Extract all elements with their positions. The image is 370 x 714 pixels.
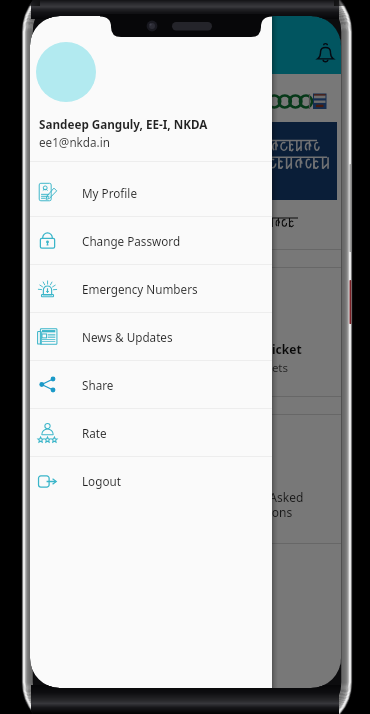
staticText: Change Password xyxy=(82,233,181,249)
button[interactable]: News & Updates xyxy=(30,313,272,361)
button[interactable]: Emergency Numbers xyxy=(30,265,272,313)
button[interactable]: Logout xyxy=(30,457,272,505)
other: Notifications xyxy=(317,43,334,64)
staticText: Frequently Asked xyxy=(206,489,304,505)
staticText: Track your tickets xyxy=(194,360,289,376)
staticText: Rate xyxy=(82,425,107,441)
button[interactable]: Rate xyxy=(30,409,272,457)
staticText: Questions xyxy=(235,504,293,520)
staticText: Logout xyxy=(82,473,121,489)
button[interactable]: Share xyxy=(30,361,272,409)
staticText: Complaint / Ticket xyxy=(192,341,302,357)
staticText: News & Updates xyxy=(82,329,173,345)
staticText: Emergency Numbers xyxy=(82,281,198,297)
staticText: ee1@nkda.in xyxy=(39,134,110,150)
button[interactable]: Change Password xyxy=(30,217,272,265)
staticText: My Profile xyxy=(82,185,137,201)
button[interactable]: My Profile xyxy=(30,169,272,217)
staticText: Share xyxy=(82,377,114,393)
staticText: Sandeep Ganguly, EE-I, NKDA xyxy=(39,116,208,132)
